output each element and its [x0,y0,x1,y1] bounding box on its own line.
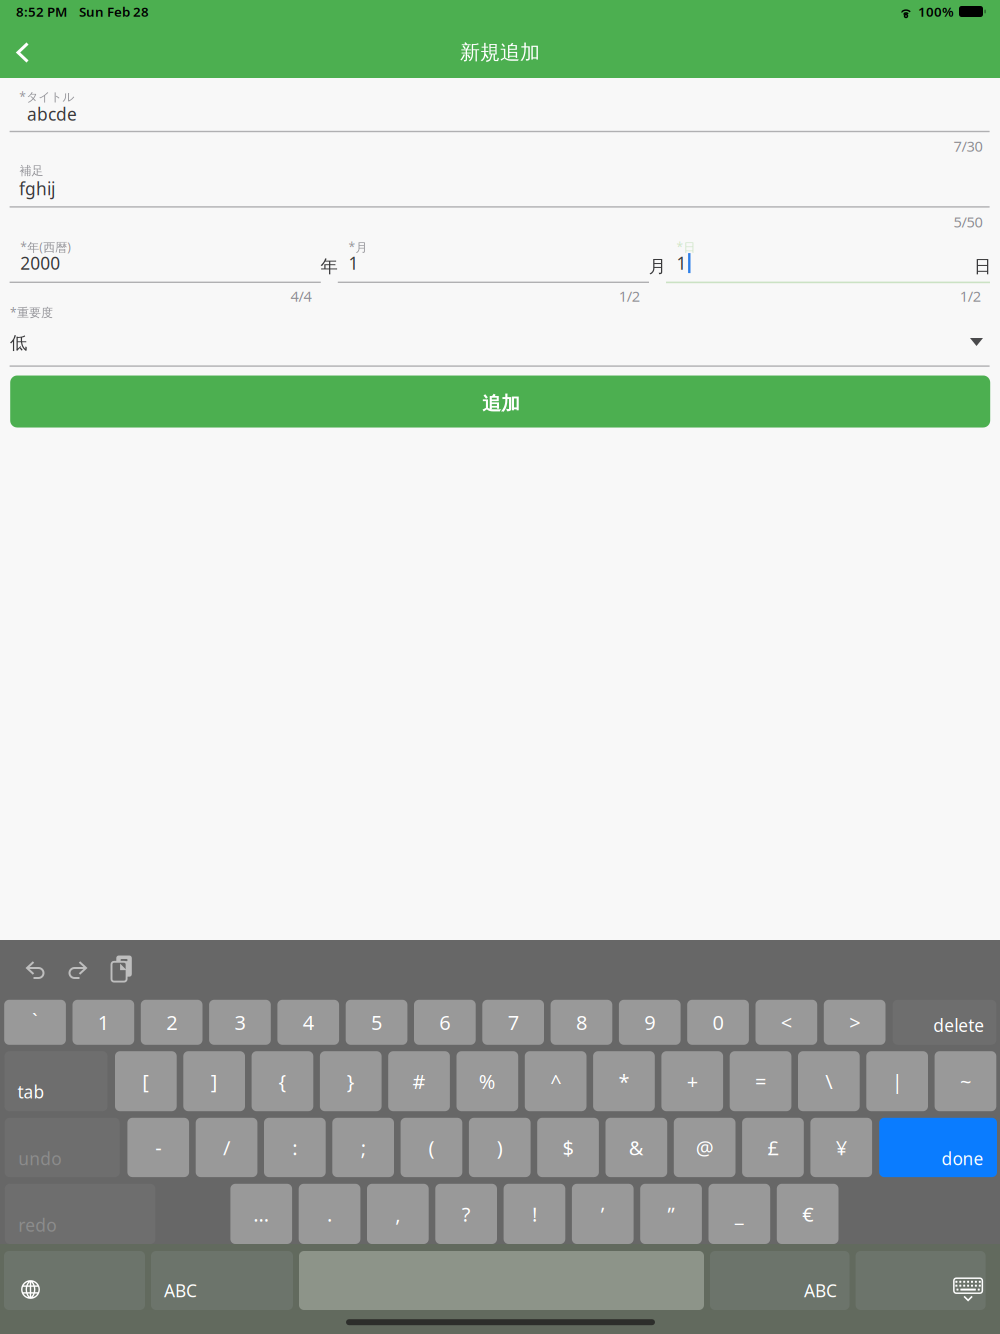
button[interactable]: [ [115,1051,177,1111]
staticText: 1/2 [960,286,981,306]
button[interactable]: *日 [666,233,1000,299]
button[interactable]: delete [893,1000,996,1045]
button[interactable]: = [730,1051,791,1111]
staticText: : [292,1134,297,1161]
staticText: & [629,1134,644,1161]
staticText: *日 [677,239,696,255]
staticText: 6 [439,1009,450,1036]
staticText: ? [462,1201,471,1227]
staticText: / [223,1134,230,1161]
staticText: 0 [713,1009,724,1036]
button[interactable]: @ [674,1118,735,1177]
button[interactable]: 3 [209,1000,271,1045]
button[interactable]: | [866,1051,928,1111]
button[interactable]: 追加 [10,375,990,427]
staticText: 5/50 [953,212,982,231]
button[interactable]: \ [798,1051,860,1111]
button[interactable]: 2 [141,1000,202,1045]
button[interactable]: ; [332,1118,394,1177]
button[interactable]: Paste [100,947,144,991]
staticText: * [618,1068,629,1094]
staticText: 補足 [19,163,43,178]
button[interactable]: 9 [619,1000,681,1045]
staticText: $ [562,1134,573,1161]
button[interactable]: } [320,1051,382,1111]
staticText: 日 [974,256,991,277]
button[interactable]: # [388,1051,450,1111]
button[interactable]: 6 [414,1000,476,1045]
staticText: , [395,1201,400,1227]
staticText: *月 [348,239,367,255]
button[interactable]: , [367,1184,429,1244]
staticText: ABC [804,1279,837,1302]
button[interactable]: undo [5,1118,120,1177]
button[interactable]: tab [4,1051,107,1111]
staticText: ’ [601,1201,605,1227]
button[interactable]: < [755,1000,817,1045]
button[interactable]: 7 [482,1000,544,1045]
button[interactable]: 0 [687,1000,749,1045]
staticText: *タイトル [19,89,74,104]
button[interactable]: 8 [551,1000,612,1045]
button[interactable]: *重要度 [0,302,1000,368]
button[interactable]: *年(西暦) [10,233,339,299]
button[interactable]: - [127,1118,189,1177]
staticText: 1 [348,252,358,275]
button[interactable]: > [824,1000,885,1045]
button[interactable]: ] [183,1051,245,1111]
staticText: # [413,1068,426,1094]
button[interactable]: ” [640,1184,702,1244]
button[interactable]: * [593,1051,655,1111]
button[interactable]: ~ [935,1051,996,1111]
button[interactable]: 5 [346,1000,407,1045]
button[interactable]: ( [401,1118,462,1177]
button[interactable]: Hide keyboard [856,1251,986,1310]
button[interactable]: redo [5,1184,155,1244]
staticText: | [892,1068,903,1094]
button[interactable]: ? [435,1184,497,1244]
button[interactable]: % [456,1051,518,1111]
button[interactable]: … [230,1184,292,1244]
button[interactable]: *月 [338,233,667,299]
button[interactable]: ’ [572,1184,634,1244]
button[interactable]: ! [504,1184,565,1244]
button[interactable]: . [299,1184,360,1244]
button[interactable]: Undo [13,948,57,992]
staticText: done [941,1147,983,1170]
button[interactable]: Redo [56,948,100,992]
staticText: } [347,1068,355,1094]
button[interactable]: ) [469,1118,531,1177]
button[interactable]: € [777,1184,838,1244]
button[interactable]: ` [4,1000,66,1045]
button[interactable]: ABC [151,1251,293,1310]
button[interactable]: ¥ [810,1118,872,1177]
button[interactable]: $ [537,1118,599,1177]
staticText: undo [18,1147,61,1170]
button[interactable]: & [605,1118,667,1177]
button[interactable]: / [196,1118,257,1177]
button[interactable]: £ [742,1118,804,1177]
button[interactable]: { [252,1051,313,1111]
button[interactable]: ^ [525,1051,586,1111]
button[interactable]: *タイトル [0,78,1000,153]
button[interactable]: Back [2,29,46,75]
staticText: ~ [960,1068,971,1094]
staticText: abcde [27,103,77,126]
staticText: *年(西暦) [20,239,71,255]
staticText: ¥ [836,1134,847,1161]
button[interactable]: : [264,1118,326,1177]
button[interactable]: Next keyboard [4,1251,145,1310]
staticText: 追加 [482,392,520,415]
staticText: 低 [10,332,27,354]
staticText: - [155,1134,161,1161]
button[interactable]: _ [708,1184,770,1244]
button[interactable]: done [879,1118,997,1177]
button[interactable]: ABC [710,1251,849,1310]
button[interactable]: + [661,1051,723,1111]
staticText: 7/30 [953,136,982,156]
button[interactable]: 4 [277,1000,339,1045]
button[interactable]: 1 [72,1000,134,1045]
button[interactable]: 補足 [0,154,1000,230]
staticText: @ [696,1134,714,1161]
